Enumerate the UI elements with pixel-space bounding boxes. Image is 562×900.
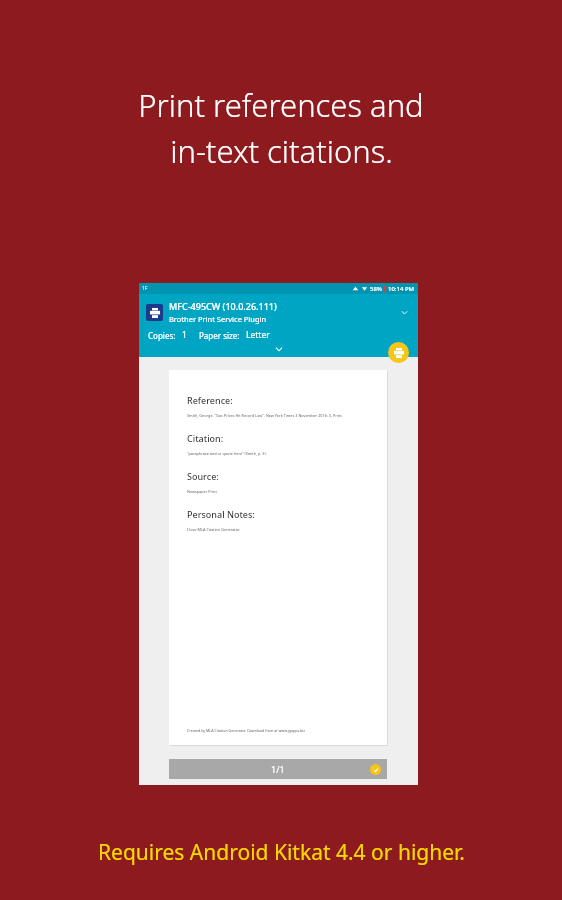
staticText: 1/1 [271,763,285,775]
staticText: Citation: [187,432,224,444]
staticText: Letter [246,329,270,341]
button[interactable]: MFC-495CW (10.0.26.111) [139,300,418,324]
staticText: Print references and [138,84,424,126]
button[interactable]: Choose printer [397,305,411,319]
staticText: MFC-495CW (10.0.26.111) [169,300,277,312]
staticText: Requires Android Kitkat 4.4 or higher. [98,838,465,867]
staticText: Paper size: [199,330,240,341]
button[interactable]: Expand print options [139,343,418,355]
staticText: Reference: [187,394,233,406]
staticText: Source: [187,470,219,482]
staticText: I love MLA Citation Generator. [187,527,240,532]
staticText: 10:14 PM [388,285,415,293]
staticText: Personal Notes: [187,508,255,520]
staticText: Copies: [148,330,176,341]
button[interactable]: Print [388,342,409,363]
staticText: 1F [142,285,148,292]
button[interactable]: Page status [370,764,381,775]
staticText: Created by MLA Citation Generator. Downl… [187,728,305,733]
staticText: 1 [182,329,187,341]
staticText: 58% [370,285,382,293]
staticText: "paraphrase and or quote here" (Smith, p… [187,451,267,456]
staticText: Smith, George. "Gas Prices Hit Record Lo… [187,413,343,418]
button[interactable]: 1/1 [169,759,387,779]
staticText: in-text citations. [170,130,393,172]
staticText: Brother Print Service Plugin [169,314,267,324]
staticText: Newspaper Print [187,489,217,494]
